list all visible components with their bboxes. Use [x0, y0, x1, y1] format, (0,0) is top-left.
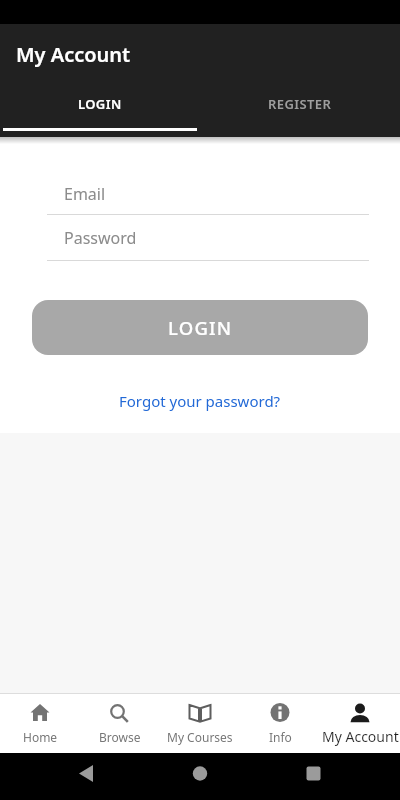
staticText: Forgot your password? [119, 391, 281, 411]
button[interactable]: Home [0, 694, 80, 753]
button[interactable]: Forgot your password? [0, 390, 400, 412]
staticText: LOGIN [78, 95, 122, 113]
button[interactable]: My Courses [160, 694, 240, 753]
staticText: LOGIN [168, 315, 233, 340]
button[interactable]: Info [240, 694, 320, 753]
button[interactable]: My Account [320, 694, 400, 753]
staticText: Password [64, 227, 137, 249]
staticText: Browse [99, 729, 141, 745]
button[interactable]: LOGIN [0, 81, 200, 137]
button[interactable]: LOGIN [32, 300, 368, 355]
staticText: My Account [322, 727, 399, 746]
staticText: My Courses [167, 729, 233, 745]
staticText: Email [64, 183, 106, 205]
button[interactable]: REGISTER [200, 81, 400, 137]
staticText: REGISTER [268, 95, 332, 113]
staticText: Home [23, 729, 58, 745]
staticText: Info [269, 729, 292, 745]
button[interactable]: Browse [80, 694, 160, 753]
staticText: My Account [16, 41, 131, 68]
